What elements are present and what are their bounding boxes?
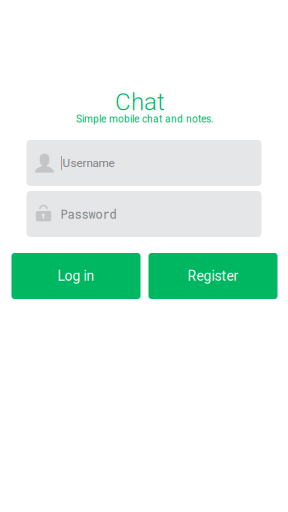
staticText: Simple mobile chat and notes. xyxy=(76,113,214,125)
button[interactable]: Password xyxy=(26,191,261,237)
staticText: Log in xyxy=(57,268,94,284)
staticText: Password xyxy=(60,206,116,222)
button[interactable]: Username xyxy=(26,140,261,186)
staticText: Chat xyxy=(115,88,165,116)
staticText: Username xyxy=(62,156,114,170)
button[interactable]: Log in xyxy=(11,253,140,299)
button[interactable]: Register xyxy=(148,253,277,299)
staticText: Register xyxy=(187,268,238,284)
